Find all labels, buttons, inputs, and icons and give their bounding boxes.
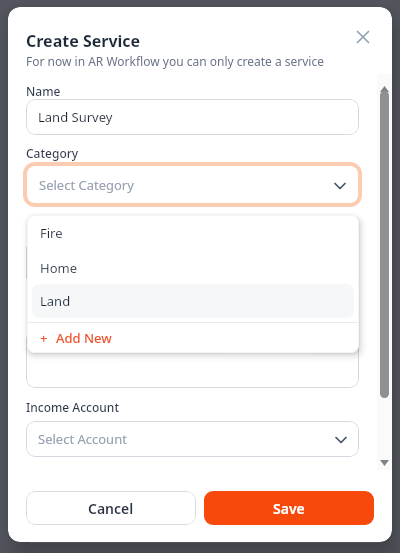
button[interactable]: Select Account (26, 421, 359, 457)
button[interactable]: Fire (27, 215, 359, 250)
staticText: Select Account (38, 430, 127, 448)
button[interactable]: Home (27, 250, 359, 285)
button[interactable]: Land Survey (26, 99, 359, 135)
button[interactable]: + (27, 323, 359, 353)
staticText: Category (26, 145, 79, 161)
staticText: Fire (40, 224, 63, 242)
staticText: Create Service (26, 30, 141, 52)
staticText: Save (273, 499, 305, 518)
staticText: Cancel (88, 499, 134, 518)
button[interactable]: Cancel (26, 491, 196, 525)
staticText: Land (40, 292, 71, 310)
staticText: Select Category (39, 176, 134, 194)
staticText: + (40, 329, 48, 347)
button[interactable]: Select Category (23, 162, 362, 207)
staticText: Income Account (26, 399, 119, 415)
staticText: Add New (56, 329, 112, 347)
staticText: For now in AR Workflow you can only crea… (26, 53, 324, 69)
staticText: Name (26, 83, 61, 99)
button[interactable] (347, 21, 379, 53)
button[interactable]: Save (204, 491, 374, 525)
button[interactable]: Land (32, 284, 354, 318)
staticText: Home (40, 259, 77, 277)
staticText: Land Survey (38, 108, 113, 126)
